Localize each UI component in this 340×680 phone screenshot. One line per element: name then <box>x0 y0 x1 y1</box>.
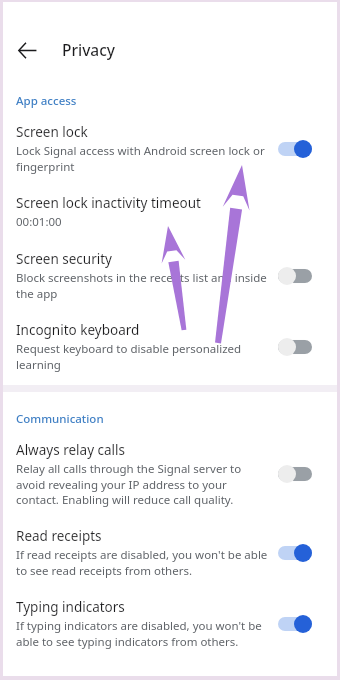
button[interactable]: Screen lock <box>3 109 337 185</box>
staticText: Relay all calls through the Signal serve… <box>16 461 272 507</box>
staticText: Read receipts <box>16 527 102 545</box>
staticText: Communication <box>16 411 104 427</box>
staticText: Screen security <box>16 250 112 268</box>
staticText: If typing indicators are disabled, you w… <box>16 618 272 649</box>
button[interactable]: Always relay calls <box>3 427 337 518</box>
staticText: Incognito keyboard <box>16 321 140 339</box>
staticText: Lock Signal access with Android screen l… <box>16 143 272 174</box>
staticText: Request keyboard to disable personalized… <box>16 341 272 372</box>
button[interactable]: Incognito keyboard <box>3 312 337 385</box>
staticText: Screen lock <box>16 123 88 141</box>
staticText: Always relay calls <box>16 441 126 459</box>
staticText: Block screenshots in the recents list an… <box>16 270 272 301</box>
staticText: App access <box>16 93 77 109</box>
staticText: Privacy <box>62 39 116 60</box>
button[interactable]: Read receipts <box>273 538 317 568</box>
button[interactable]: Screen lock <box>273 134 317 164</box>
button[interactable]: Screen security <box>273 261 317 291</box>
button[interactable]: Back <box>11 34 43 66</box>
button[interactable]: Screen lock inactivity timeout <box>3 185 337 241</box>
button[interactable]: Screen security <box>3 241 337 312</box>
staticText: Typing indicators <box>16 598 125 616</box>
button[interactable]: Always relay calls <box>273 459 317 489</box>
button[interactable]: Read receipts <box>3 518 337 589</box>
staticText: 00:01:00 <box>16 214 62 230</box>
button[interactable]: Typing indicators <box>273 609 317 639</box>
button[interactable]: Incognito keyboard <box>273 332 317 362</box>
button[interactable]: Typing indicators <box>3 589 337 660</box>
staticText: Screen lock inactivity timeout <box>16 194 201 212</box>
staticText: If read receipts are disabled, you won't… <box>16 547 272 578</box>
